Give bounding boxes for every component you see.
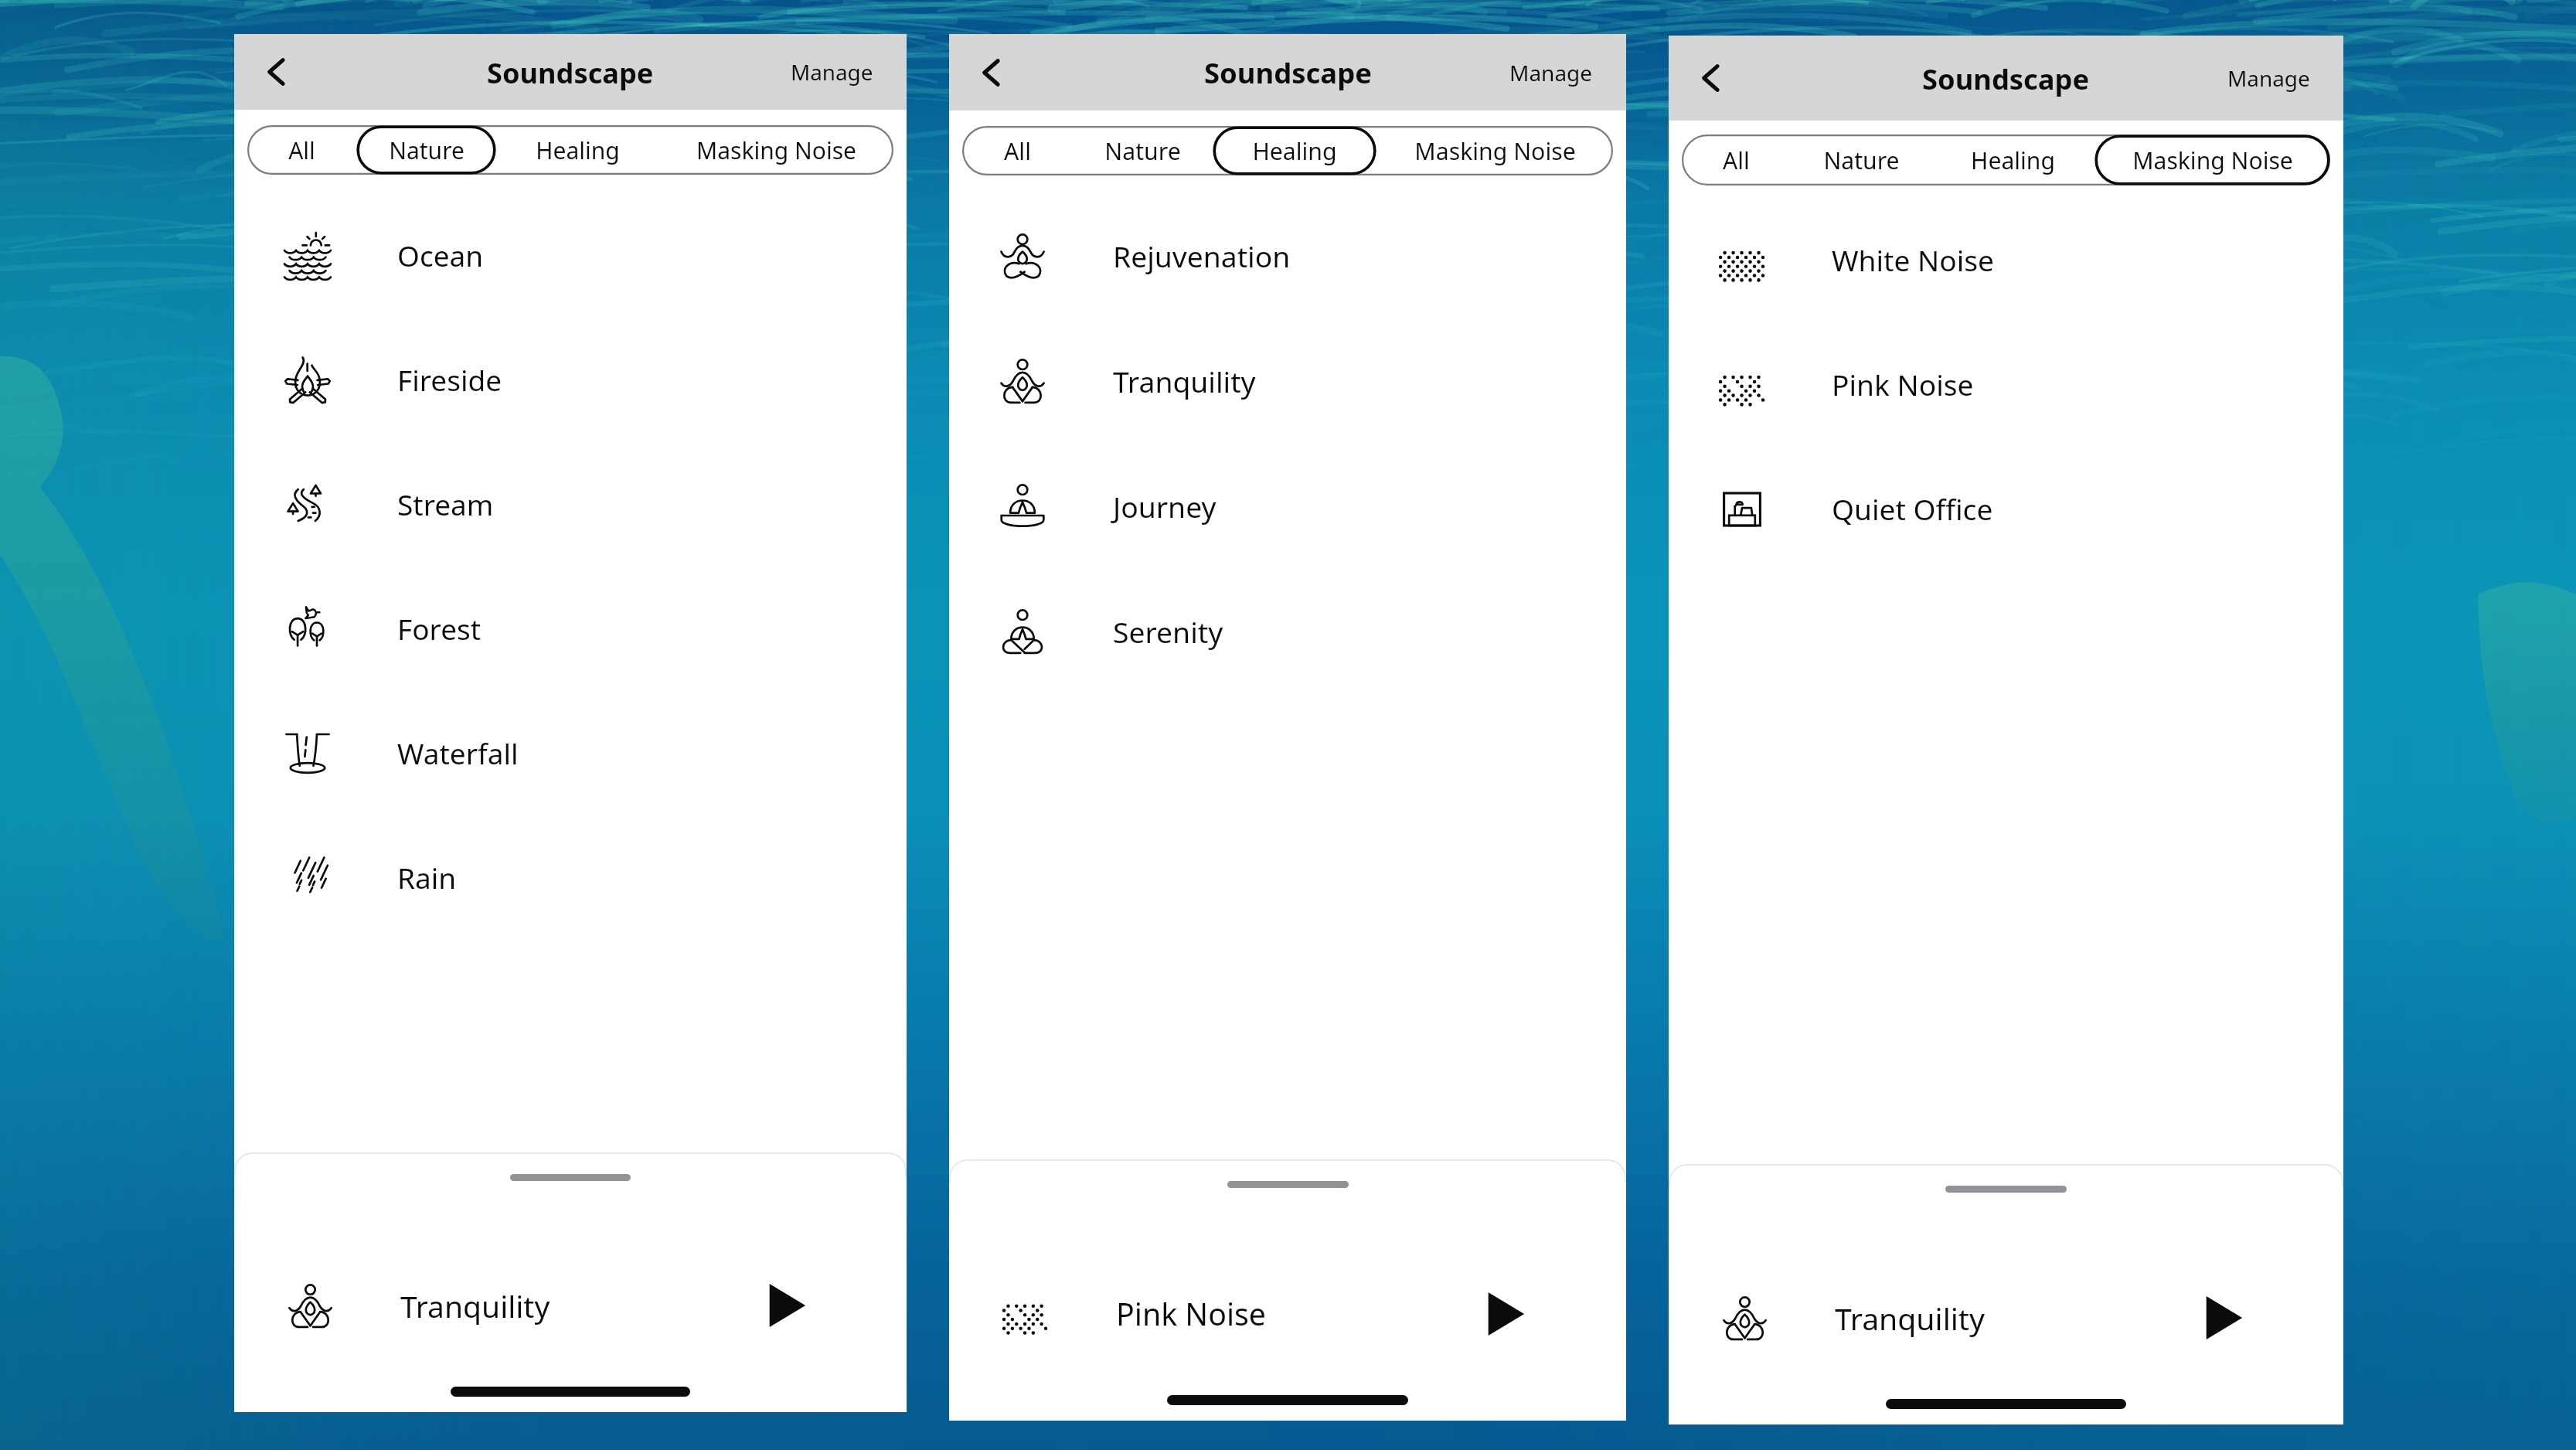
staticText: All <box>1004 135 1031 167</box>
button[interactable]: Play <box>768 1284 812 1327</box>
staticText: All <box>288 134 315 166</box>
button[interactable]: Tranquility <box>1669 1283 2343 1353</box>
button[interactable]: Rejuvenation <box>949 193 1626 318</box>
button[interactable]: Masking Noise <box>658 125 893 175</box>
staticText: Rejuvenation <box>1113 237 1291 276</box>
staticText: Pink Noise <box>1832 365 1974 404</box>
staticText: Rain <box>397 858 457 897</box>
button[interactable]: Back <box>968 49 1015 96</box>
button[interactable]: Manage <box>2194 51 2343 105</box>
staticText: Masking Noise <box>1414 135 1576 167</box>
staticText: Nature <box>1104 135 1181 167</box>
button[interactable]: Healing <box>496 125 658 175</box>
button[interactable]: Pink Noise <box>1669 322 2343 447</box>
staticText: Soundscape <box>487 53 654 91</box>
button[interactable]: Back <box>254 49 300 95</box>
button[interactable]: Play <box>2205 1296 2248 1339</box>
button[interactable]: Back <box>1688 55 1734 101</box>
button[interactable]: Healing <box>1213 126 1376 175</box>
button[interactable]: Manage <box>1476 46 1626 100</box>
button[interactable]: Manage <box>757 45 907 99</box>
staticText: Stream <box>397 485 494 523</box>
staticText: Tranquility <box>400 1285 550 1326</box>
button[interactable]: Play <box>1487 1292 1530 1336</box>
staticText: All <box>1723 145 1750 176</box>
button[interactable]: Nature <box>1791 134 1931 186</box>
staticText: Journey <box>1113 487 1217 526</box>
staticText: Tranquility <box>1835 1298 1985 1339</box>
staticText: Masking Noise <box>696 134 856 166</box>
staticText: Manage <box>1509 58 1593 87</box>
staticText: Soundscape <box>1922 60 2090 97</box>
staticText: Manage <box>791 57 873 87</box>
staticText: Nature <box>389 134 464 166</box>
button[interactable]: All <box>247 125 356 175</box>
staticText: Healing <box>536 134 620 166</box>
button[interactable]: Masking Noise <box>2094 134 2330 186</box>
button[interactable]: Journey <box>949 444 1626 569</box>
staticText: Healing <box>1971 145 2055 176</box>
button[interactable]: Tranquility <box>949 318 1626 444</box>
button[interactable]: Nature <box>356 125 496 175</box>
button[interactable]: Serenity <box>949 569 1626 694</box>
button[interactable]: Nature <box>1072 126 1213 175</box>
staticText: Soundscape <box>1204 53 1372 92</box>
staticText: Fireside <box>397 360 502 399</box>
staticText: White Noise <box>1832 240 1995 280</box>
staticText: Nature <box>1823 145 1900 176</box>
staticText: Ocean <box>397 236 484 274</box>
staticText: Quiet Office <box>1832 489 1993 529</box>
button[interactable]: Ocean <box>234 192 907 317</box>
staticText: Serenity <box>1113 612 1223 652</box>
button[interactable]: Forest <box>234 566 907 690</box>
button[interactable]: All <box>962 126 1072 175</box>
button[interactable]: Tranquility <box>234 1271 907 1340</box>
button[interactable]: White Noise <box>1669 198 2343 322</box>
button[interactable]: Pink Noise <box>949 1278 1626 1349</box>
staticText: Pink Noise <box>1116 1293 1267 1334</box>
staticText: Masking Noise <box>2132 145 2293 176</box>
staticText: Waterfall <box>397 734 519 772</box>
button[interactable]: Stream <box>234 441 907 566</box>
staticText: Manage <box>2227 63 2310 93</box>
button[interactable]: Masking Noise <box>1376 126 1613 175</box>
button[interactable]: Healing <box>1931 134 2094 186</box>
button[interactable]: Quiet Office <box>1669 447 2343 571</box>
staticText: Healing <box>1252 135 1337 167</box>
button[interactable]: Rain <box>234 815 907 939</box>
button[interactable]: Waterfall <box>234 690 907 815</box>
button[interactable]: Fireside <box>234 317 907 441</box>
staticText: Tranquility <box>1113 362 1256 401</box>
staticText: Forest <box>397 609 482 648</box>
button[interactable]: All <box>1682 134 1791 186</box>
